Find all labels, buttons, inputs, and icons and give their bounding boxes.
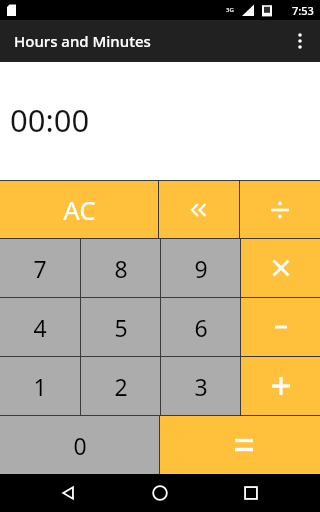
button[interactable]: 7 xyxy=(0,239,80,297)
button[interactable]: Back xyxy=(47,474,91,512)
staticText: AC xyxy=(63,192,96,227)
button[interactable]: 6 xyxy=(161,298,240,356)
button[interactable]: 3 xyxy=(161,357,240,415)
staticText: 9 xyxy=(194,253,208,284)
button[interactable]: 4 xyxy=(0,298,80,356)
button[interactable]: Minus xyxy=(241,298,320,356)
button[interactable]: More options xyxy=(280,20,320,62)
button[interactable]: Multiply xyxy=(241,239,320,297)
button[interactable]: 5 xyxy=(81,298,160,356)
button[interactable]: Backspace xyxy=(159,181,239,238)
button[interactable]: 9 xyxy=(161,239,240,297)
button[interactable]: Plus xyxy=(241,357,320,415)
button[interactable]: 0 xyxy=(0,416,159,474)
button[interactable]: 8 xyxy=(81,239,160,297)
staticText: 1 xyxy=(33,371,47,402)
staticText: 2 xyxy=(114,371,128,402)
staticText: 3 xyxy=(194,371,208,402)
button[interactable]: 2 xyxy=(81,357,160,415)
button[interactable]: 1 xyxy=(0,357,80,415)
staticText: 0 xyxy=(73,430,87,461)
button[interactable]: Recent apps xyxy=(229,474,273,512)
staticText: 7 xyxy=(33,253,47,284)
staticText: 8 xyxy=(114,253,128,284)
staticText: 4 xyxy=(33,312,47,343)
button[interactable]: Equals xyxy=(160,416,320,474)
staticText: Hours and Minutes xyxy=(14,31,151,51)
button[interactable]: AC xyxy=(0,181,158,238)
staticText: 6 xyxy=(194,312,208,343)
staticText: 7:53 xyxy=(292,3,314,18)
button[interactable]: Home xyxy=(138,474,182,512)
staticText: 00:00 xyxy=(10,99,90,141)
staticText: 5 xyxy=(114,312,128,343)
staticText: 3G xyxy=(226,6,234,14)
button[interactable]: Divide xyxy=(240,181,320,238)
